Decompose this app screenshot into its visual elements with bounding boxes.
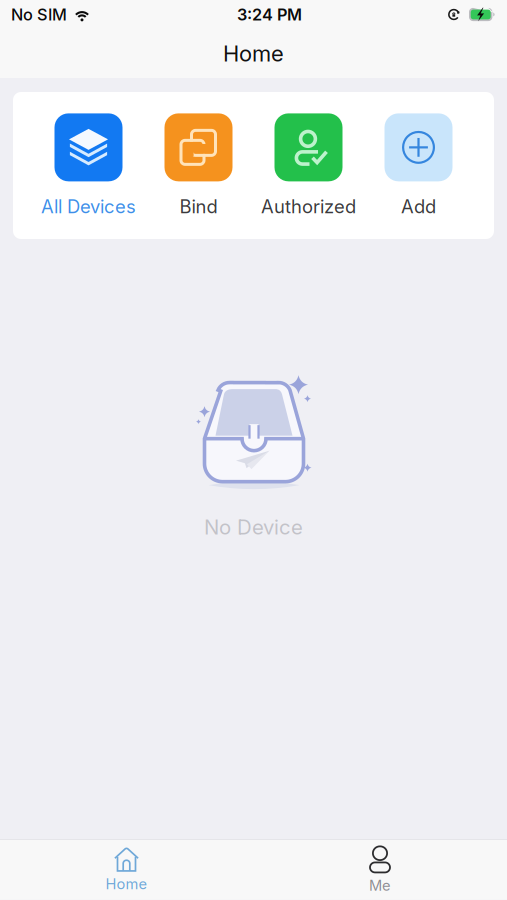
button[interactable]: Bind: [143, 107, 253, 223]
button[interactable]: Me: [253, 840, 507, 900]
button[interactable]: Home: [0, 840, 253, 900]
staticText: No SIM: [11, 5, 67, 24]
staticText: Me: [369, 876, 391, 894]
staticText: Add: [401, 195, 436, 218]
button[interactable]: Authorized: [253, 107, 363, 223]
staticText: No Device: [204, 515, 303, 539]
staticText: Home: [105, 875, 147, 893]
staticText: Home: [223, 40, 284, 67]
staticText: Authorized: [261, 195, 356, 218]
staticText: 3:24 PM: [237, 5, 302, 24]
staticText: All Devices: [41, 195, 136, 218]
button[interactable]: Add: [363, 107, 473, 223]
staticText: Bind: [179, 195, 217, 218]
button[interactable]: All Devices: [33, 107, 143, 223]
